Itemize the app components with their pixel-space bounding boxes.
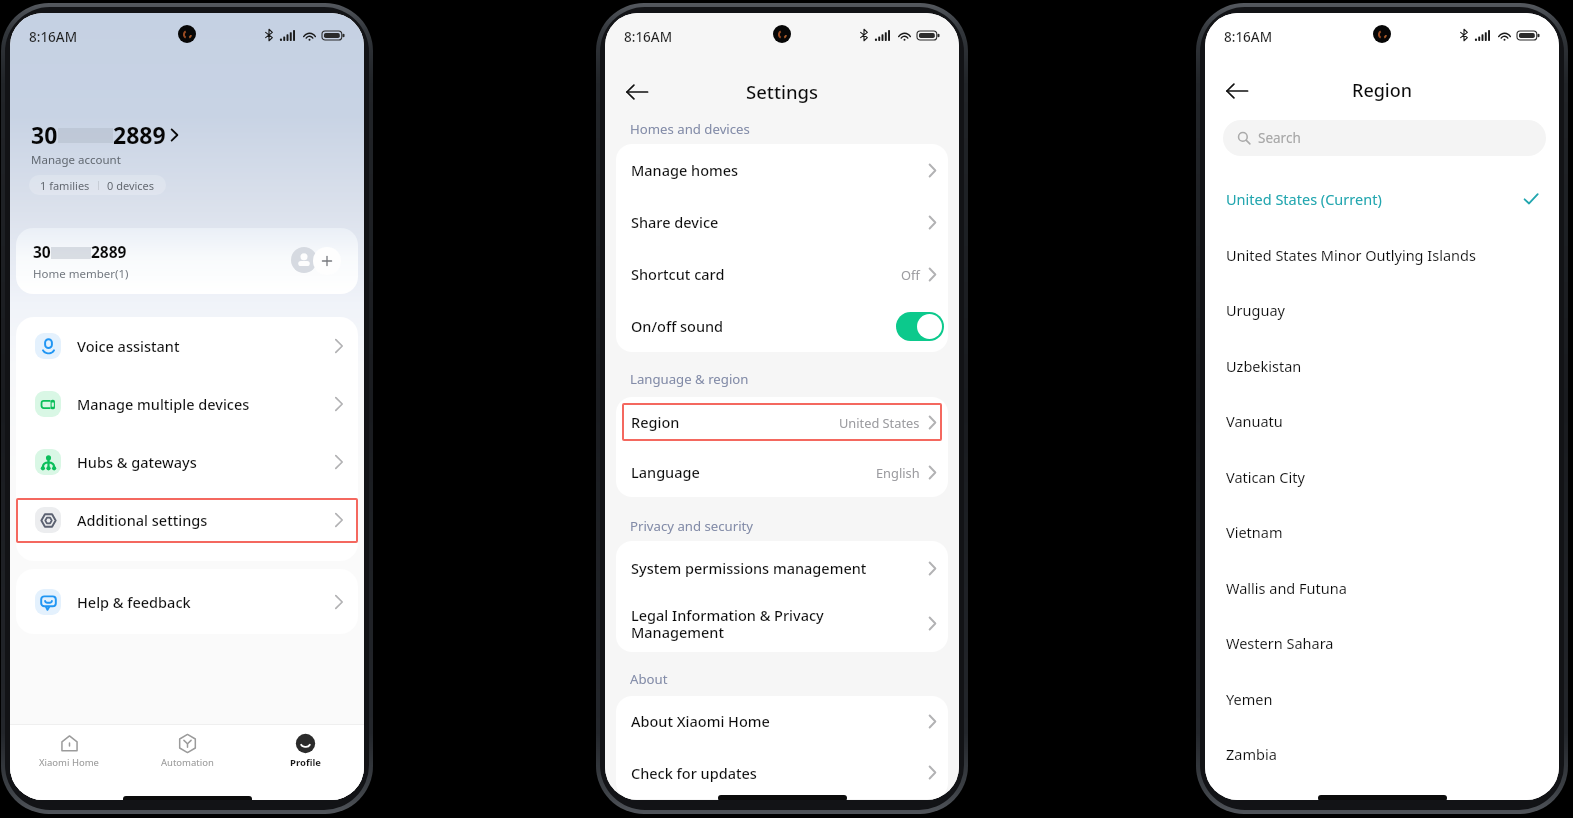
staticText: Manage multiple devices: [77, 394, 250, 414]
staticText: United States: [839, 414, 920, 431]
staticText: Help & feedback: [77, 592, 191, 612]
button[interactable]: Vatican City: [1205, 455, 1559, 499]
button[interactable]: Yemen: [1205, 677, 1559, 721]
button[interactable]: Hubs & gateways: [16, 433, 358, 491]
button[interactable]: Language: [616, 447, 948, 497]
staticText: System permissions management: [631, 558, 928, 578]
button[interactable]: Check for updates: [616, 746, 948, 799]
staticText: Vanuatu: [1226, 411, 1539, 431]
staticText: Region: [1352, 78, 1413, 103]
staticText: Check for updates: [631, 763, 928, 783]
staticText: 8:16AM: [624, 28, 673, 46]
button[interactable]: Shortcut card: [616, 248, 948, 300]
staticText: Hubs & gateways: [77, 452, 197, 472]
staticText: Voice assistant: [77, 336, 180, 356]
button[interactable]: Manage homes: [616, 144, 948, 196]
button[interactable]: Uzbekistan: [1205, 344, 1559, 388]
staticText: Off: [901, 266, 920, 283]
staticText: Privacy and security: [630, 517, 754, 535]
button[interactable]: Xiaomi Home: [10, 733, 128, 769]
staticText: Shortcut card: [631, 264, 901, 284]
staticText: Region: [631, 412, 839, 432]
staticText: Wallis and Futuna: [1226, 578, 1539, 598]
staticText: United States (Current): [1226, 189, 1523, 209]
staticText: Legal Information & Privacy Management: [631, 605, 928, 642]
button[interactable]: 1 families: [29, 175, 166, 195]
button[interactable]: Search: [1223, 120, 1546, 156]
staticText: About: [630, 670, 668, 688]
staticText: Uruguay: [1226, 300, 1539, 320]
staticText: 2889: [91, 241, 127, 262]
button[interactable]: Back: [620, 75, 653, 108]
staticText: 30: [31, 119, 58, 150]
staticText: 8:16AM: [1224, 28, 1273, 46]
staticText: Xiaomi Home: [39, 756, 99, 769]
button[interactable]: United States Minor Outlying Islands: [1205, 233, 1559, 277]
staticText: Language & region: [630, 370, 749, 388]
button[interactable]: Legal Information & Privacy Management: [616, 595, 948, 652]
staticText: Homes and devices: [630, 120, 750, 138]
button[interactable]: Uruguay: [1205, 288, 1559, 332]
staticText: Uzbekistan: [1226, 356, 1539, 376]
staticText: 8:16AM: [29, 28, 78, 46]
button[interactable]: Region: [616, 397, 948, 447]
staticText: Manage homes: [631, 160, 928, 180]
staticText: Home member(1): [33, 266, 129, 282]
button[interactable]: Share device: [616, 196, 948, 248]
button[interactable]: Manage multiple devices: [16, 375, 358, 433]
staticText: United States Minor Outlying Islands: [1226, 245, 1539, 265]
staticText: Zambia: [1226, 744, 1539, 764]
staticText: Search: [1258, 129, 1301, 147]
staticText: Profile: [290, 756, 321, 769]
button[interactable]: 30: [16, 228, 358, 294]
staticText: About Xiaomi Home: [631, 711, 928, 731]
button[interactable]: United States (Current): [1205, 177, 1559, 221]
staticText: English: [876, 464, 920, 481]
staticText: Automation: [161, 756, 214, 769]
staticText: Vatican City: [1226, 467, 1539, 487]
button[interactable]: Add member: [313, 247, 341, 275]
button[interactable]: 30: [31, 119, 179, 150]
button[interactable]: On/off sound: [616, 300, 948, 352]
button[interactable]: Voice assistant: [16, 317, 358, 375]
staticText: Share device: [631, 212, 928, 232]
staticText: 1 families: [40, 178, 90, 193]
button[interactable]: Additional settings: [16, 491, 358, 549]
button[interactable]: Western Sahara: [1205, 621, 1559, 665]
staticText: 30: [33, 241, 51, 262]
button[interactable]: Vietnam: [1205, 510, 1559, 554]
staticText: On/off sound: [631, 316, 896, 336]
button[interactable]: Zambia: [1205, 732, 1559, 776]
staticText: 0 devices: [107, 178, 155, 193]
button[interactable]: Vanuatu: [1205, 399, 1559, 443]
button[interactable]: Profile: [246, 733, 364, 769]
button[interactable]: Back: [1220, 74, 1253, 107]
button[interactable]: Automation: [128, 733, 246, 769]
staticText: Yemen: [1226, 689, 1539, 709]
staticText: Vietnam: [1226, 522, 1539, 542]
staticText: Manage account: [31, 152, 121, 168]
button[interactable]: Wallis and Futuna: [1205, 566, 1559, 610]
staticText: Settings: [746, 79, 819, 104]
staticText: Western Sahara: [1226, 633, 1539, 653]
button[interactable]: About Xiaomi Home: [616, 696, 948, 746]
staticText: Additional settings: [77, 510, 208, 530]
button[interactable]: Help & feedback: [16, 569, 358, 634]
staticText: 2889: [113, 119, 166, 150]
staticText: Language: [631, 462, 876, 482]
button[interactable]: System permissions management: [616, 541, 948, 595]
